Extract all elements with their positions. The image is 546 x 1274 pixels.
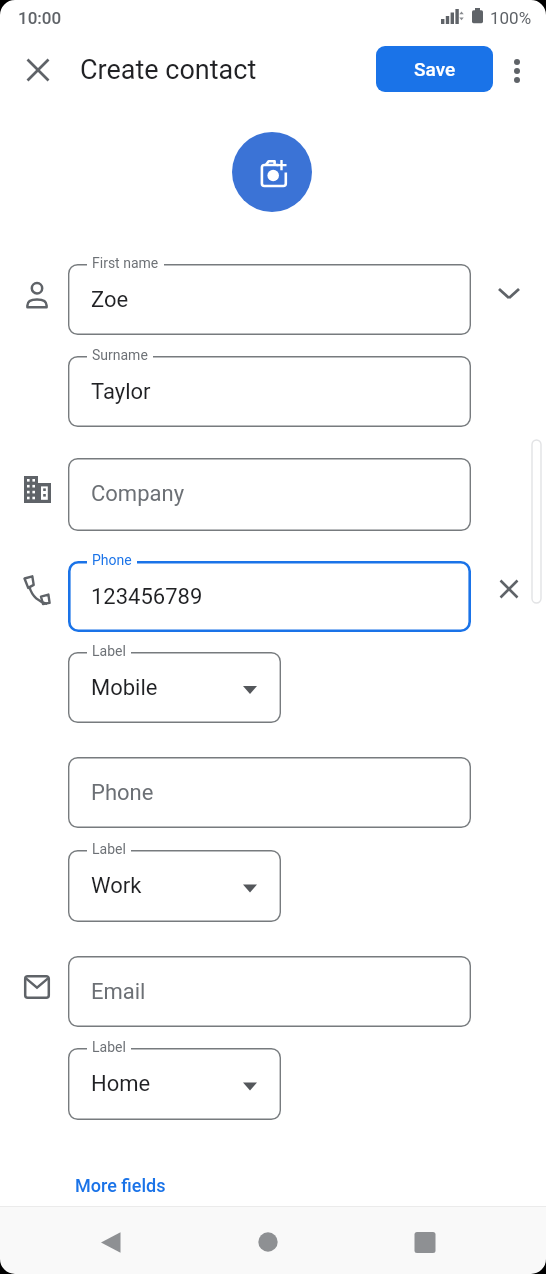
button[interactable] — [244, 1218, 292, 1266]
staticText: Company — [91, 481, 185, 507]
staticText: Phone — [92, 552, 132, 568]
button[interactable] — [401, 1218, 449, 1266]
button[interactable]: Phone — [68, 561, 471, 632]
staticText: Taylor — [91, 379, 151, 405]
staticText: Zoe — [91, 287, 129, 313]
button[interactable] — [485, 269, 533, 317]
button[interactable]: More fields — [60, 1163, 190, 1205]
staticText: 10:00 — [18, 8, 62, 28]
button[interactable]: Label — [68, 1048, 281, 1120]
staticText: Phone — [91, 780, 154, 806]
button[interactable] — [86, 1218, 134, 1266]
button[interactable]: Label — [68, 652, 281, 723]
staticText: Surname — [92, 347, 148, 363]
staticText: Work — [91, 873, 142, 899]
staticText: 100% — [490, 8, 532, 28]
button[interactable]: Email — [68, 956, 471, 1027]
staticText: Email — [91, 979, 146, 1005]
staticText: Label — [92, 841, 126, 857]
button[interactable] — [485, 565, 533, 613]
button[interactable] — [496, 48, 538, 92]
staticText: 123456789 — [91, 584, 203, 610]
staticText: Label — [92, 1039, 126, 1055]
staticText: First name — [92, 255, 159, 271]
staticText: More fields — [75, 1175, 166, 1196]
button[interactable]: Surname — [68, 356, 471, 427]
staticText: Create contact — [80, 54, 257, 86]
button[interactable]: Save — [376, 46, 493, 92]
button[interactable]: Phone — [68, 757, 471, 828]
staticText: Home — [91, 1071, 151, 1097]
button[interactable]: Label — [68, 850, 281, 922]
button[interactable]: First name — [68, 264, 471, 335]
button[interactable]: Company — [68, 458, 471, 531]
button[interactable] — [232, 132, 312, 212]
button[interactable] — [14, 46, 62, 94]
staticText: Save — [414, 58, 456, 80]
staticText: Label — [92, 643, 126, 659]
staticText: Mobile — [91, 675, 158, 701]
